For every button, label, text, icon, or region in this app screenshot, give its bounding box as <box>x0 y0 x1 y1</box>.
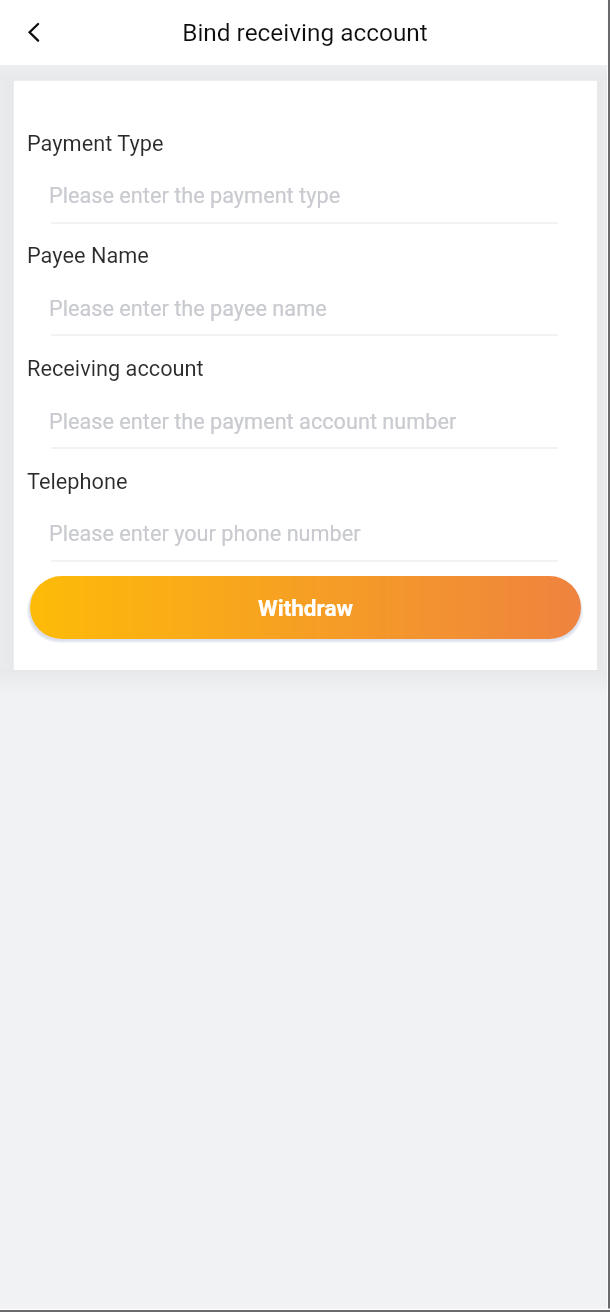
staticText: Please enter the payee name <box>49 296 327 321</box>
staticText: Bind receiving account <box>182 18 428 47</box>
staticText: Telephone <box>27 469 128 494</box>
button[interactable]: Back <box>9 9 57 57</box>
button[interactable]: Receiving account <box>14 345 597 449</box>
staticText: Payment Type <box>27 131 164 156</box>
staticText: Please enter your phone number <box>49 521 361 546</box>
button[interactable]: Withdraw <box>30 576 581 639</box>
staticText: Please enter the payment account number <box>49 409 457 434</box>
button[interactable]: Payment Type <box>14 120 597 224</box>
staticText: Please enter the payment type <box>49 183 341 208</box>
staticText: Receiving account <box>27 356 204 381</box>
staticText: Withdraw <box>258 595 354 621</box>
staticText: Payee Name <box>27 243 149 268</box>
button[interactable]: Telephone <box>14 458 597 562</box>
button[interactable]: Payee Name <box>14 233 597 337</box>
